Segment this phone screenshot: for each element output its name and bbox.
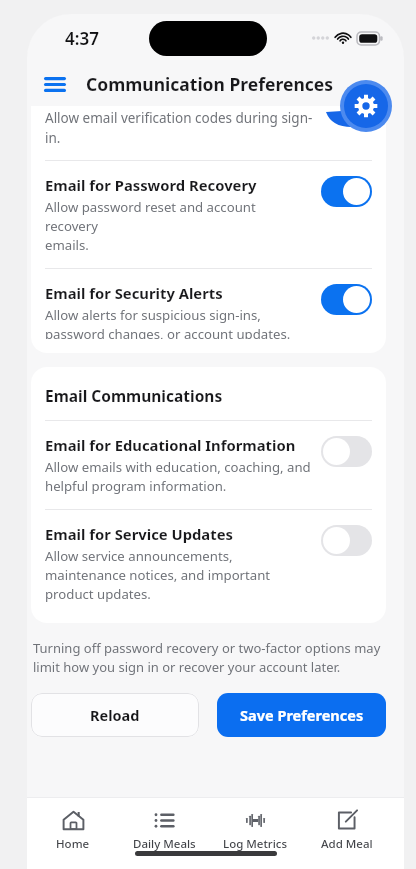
button[interactable]: Email for Service Updates — [45, 510, 372, 617]
button[interactable]: Email for Educational Information — [45, 421, 372, 509]
staticText: Turning off password recovery or two-fac… — [33, 639, 381, 676]
staticText: Email for Password Recovery — [45, 175, 257, 195]
button[interactable]: Daily Meals — [119, 809, 210, 869]
staticText: Email for Security Alerts — [45, 283, 223, 303]
staticText: Communication Preferences — [86, 72, 334, 96]
staticText: Email for Service Updates — [45, 524, 233, 544]
button[interactable]: Email for Password Recovery — [45, 161, 372, 268]
button[interactable]: Home — [27, 809, 119, 869]
staticText: Allow email verification codes during si… — [45, 109, 313, 147]
staticText: Allow emails with education, coaching, a… — [45, 458, 311, 495]
staticText: Add Meal — [321, 836, 373, 852]
staticText: Email Communications — [45, 385, 223, 406]
button[interactable]: Email for Educational Information off — [321, 436, 372, 467]
staticText: Reload — [90, 705, 140, 725]
button[interactable]: Save Preferences — [217, 693, 386, 737]
button[interactable]: Settings — [332, 72, 400, 140]
button[interactable]: Add Meal — [301, 809, 392, 869]
staticText: Allow alerts for suspicious sign-ins, pa… — [45, 306, 291, 339]
button[interactable]: Reload — [31, 693, 199, 737]
button[interactable]: Email for Service Updates off — [321, 525, 372, 556]
staticText: 4:37 — [65, 27, 99, 50]
button[interactable]: Email for Security Alerts on — [321, 284, 372, 315]
staticText: Allow password reset and account recover… — [45, 198, 311, 254]
button[interactable]: Email for Security Alerts — [45, 269, 372, 353]
staticText: Log Metrics — [223, 836, 288, 852]
button[interactable]: Log Metrics — [210, 809, 301, 869]
staticText: Daily Meals — [133, 836, 196, 852]
staticText: Home — [56, 836, 90, 852]
button[interactable]: Open navigation menu — [35, 64, 75, 104]
staticText: Save Preferences — [240, 705, 364, 725]
button[interactable]: Email for Password Recovery on — [321, 176, 372, 207]
staticText: Email for Educational Information — [45, 435, 296, 455]
staticText: Allow service announcements, maintenance… — [45, 547, 271, 603]
